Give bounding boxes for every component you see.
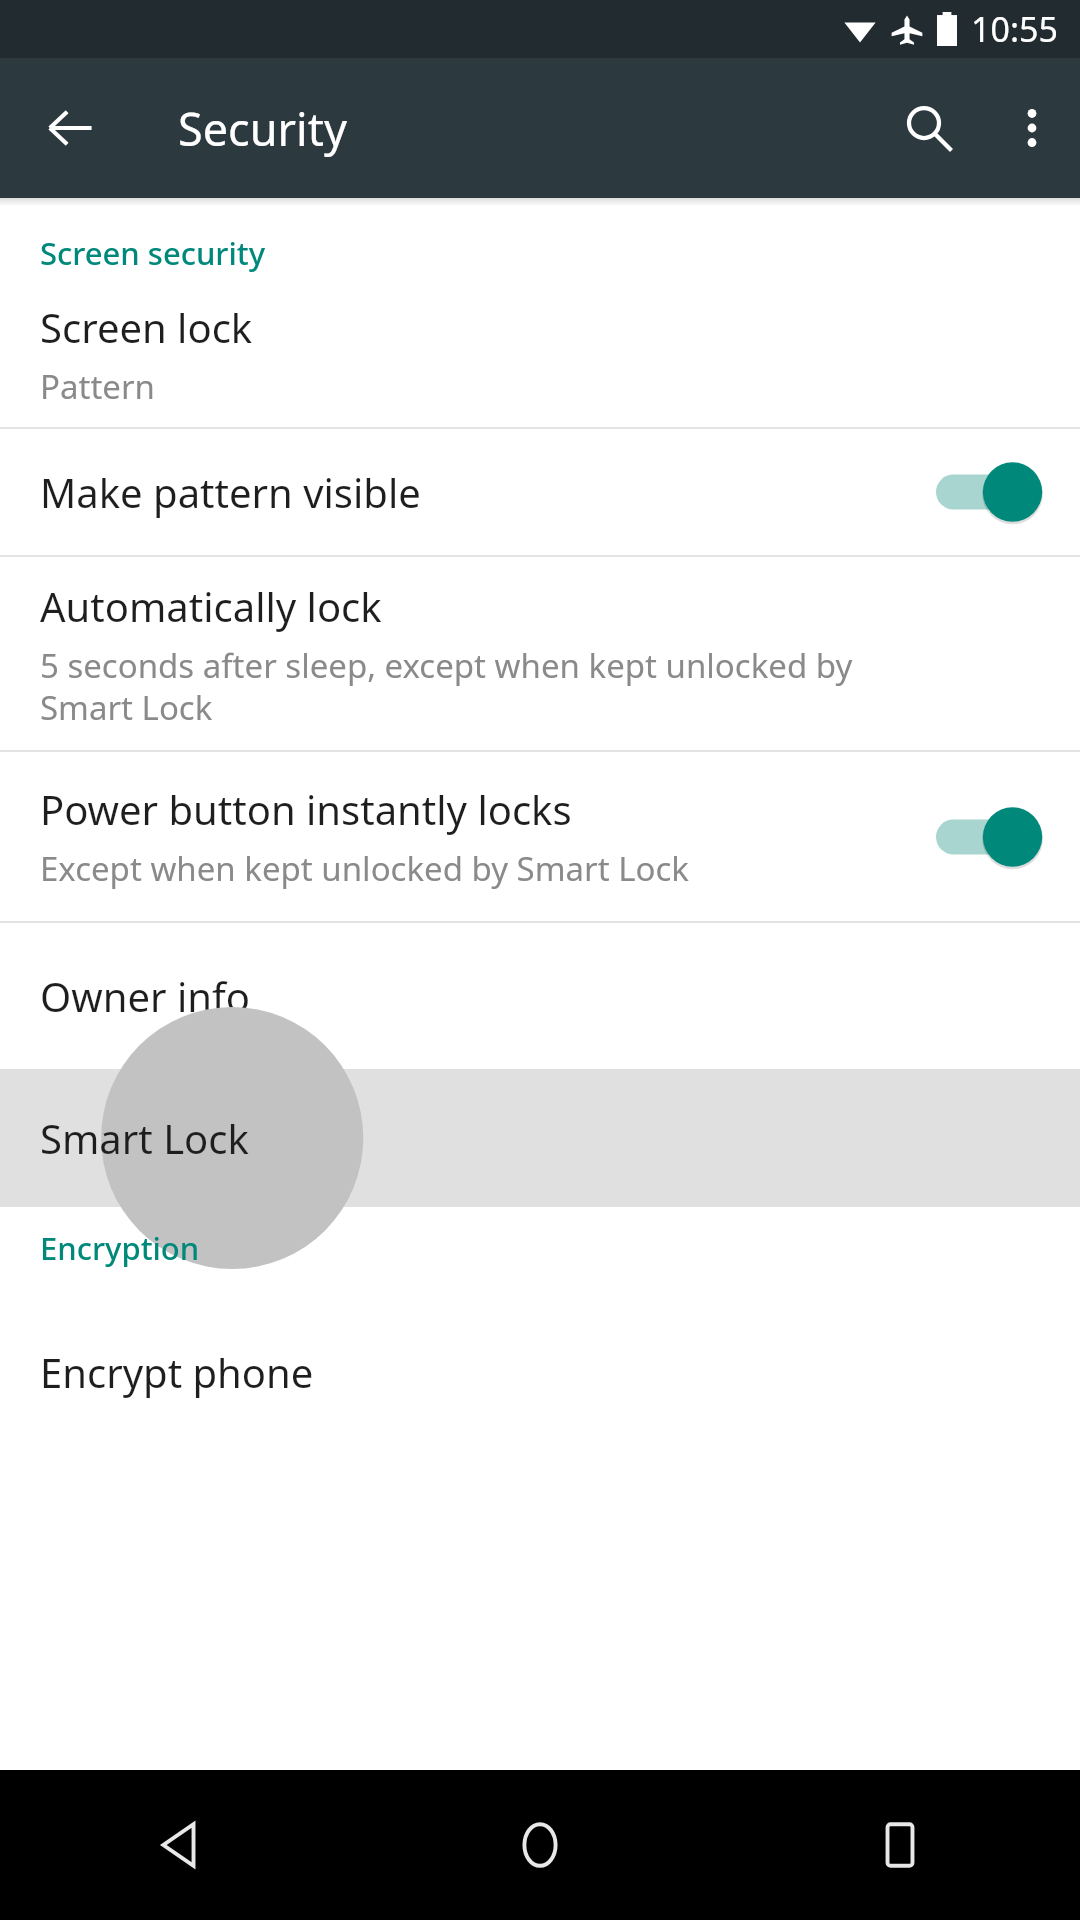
button[interactable]: Power button instantly locks [0,752,1080,921]
staticText: Power button instantly locks [40,782,572,836]
staticText: Make pattern visible [40,465,421,519]
staticText: Encryption [40,1227,200,1269]
button[interactable]: Automatically lock [0,557,1080,750]
staticText: 5 seconds after sleep, except when kept … [40,643,853,730]
staticText: Smart Lock [40,1111,249,1165]
button[interactable]: Back [0,1770,360,1920]
button[interactable]: Toggle on [936,804,1040,870]
button[interactable]: Smart Lock [0,1069,1080,1207]
button[interactable]: Search [874,73,984,183]
staticText: Encrypt phone [40,1345,314,1399]
staticText: Screen lock [40,300,253,354]
staticText: Screen security [40,232,266,274]
staticText: 10:55 [971,6,1058,52]
button[interactable]: Back [22,80,118,176]
button[interactable]: Toggle on [936,459,1040,525]
button[interactable]: Owner info [0,923,1080,1069]
staticText: Except when kept unlocked by Smart Lock [40,846,689,891]
button[interactable]: Home [360,1770,720,1920]
button[interactable]: Encrypt phone [0,1299,1080,1419]
staticText: Pattern [40,364,155,409]
staticText: Automatically lock [40,579,382,633]
button[interactable]: More options [984,80,1080,176]
button[interactable]: Make pattern visible [0,429,1080,555]
button[interactable]: Screen lock [0,300,1080,409]
button[interactable]: Recent apps [720,1770,1080,1920]
staticText: Security [178,98,347,159]
staticText: Owner info [40,969,250,1023]
